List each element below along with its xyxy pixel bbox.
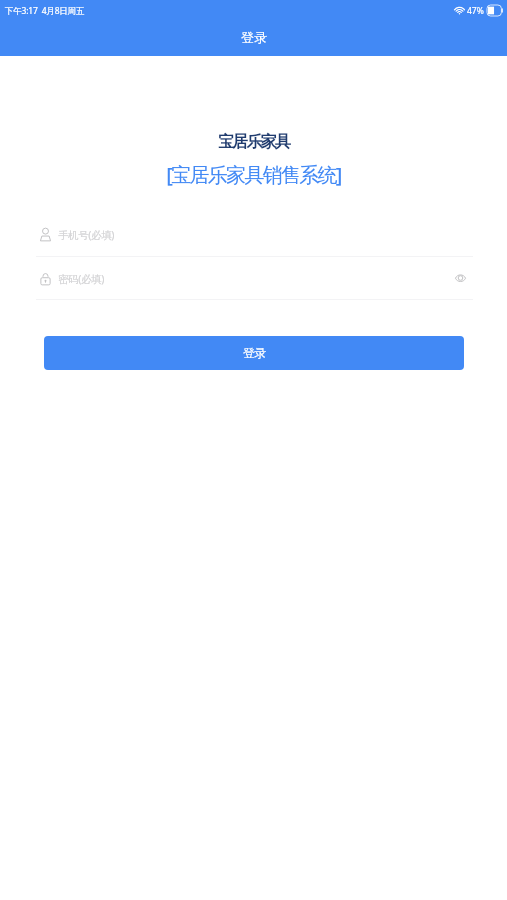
staticText: 登录 <box>243 345 266 360</box>
staticText: 密码(必填) <box>58 272 104 286</box>
staticText: 47% <box>467 5 484 17</box>
staticText: 手机号(必填) <box>58 228 114 242</box>
button[interactable]: Show password <box>452 270 468 286</box>
button[interactable]: 手机号(必填) <box>0 213 507 256</box>
staticText: 宝居乐家具 <box>0 132 507 152</box>
button[interactable]: 登录 <box>44 336 464 370</box>
staticText: [宝居乐家具销售系统] <box>0 161 507 188</box>
button[interactable]: 密码(必填) <box>0 257 507 300</box>
staticText: 下午3:17 4月8日周五 <box>5 5 85 17</box>
staticText: 登录 <box>241 29 267 45</box>
